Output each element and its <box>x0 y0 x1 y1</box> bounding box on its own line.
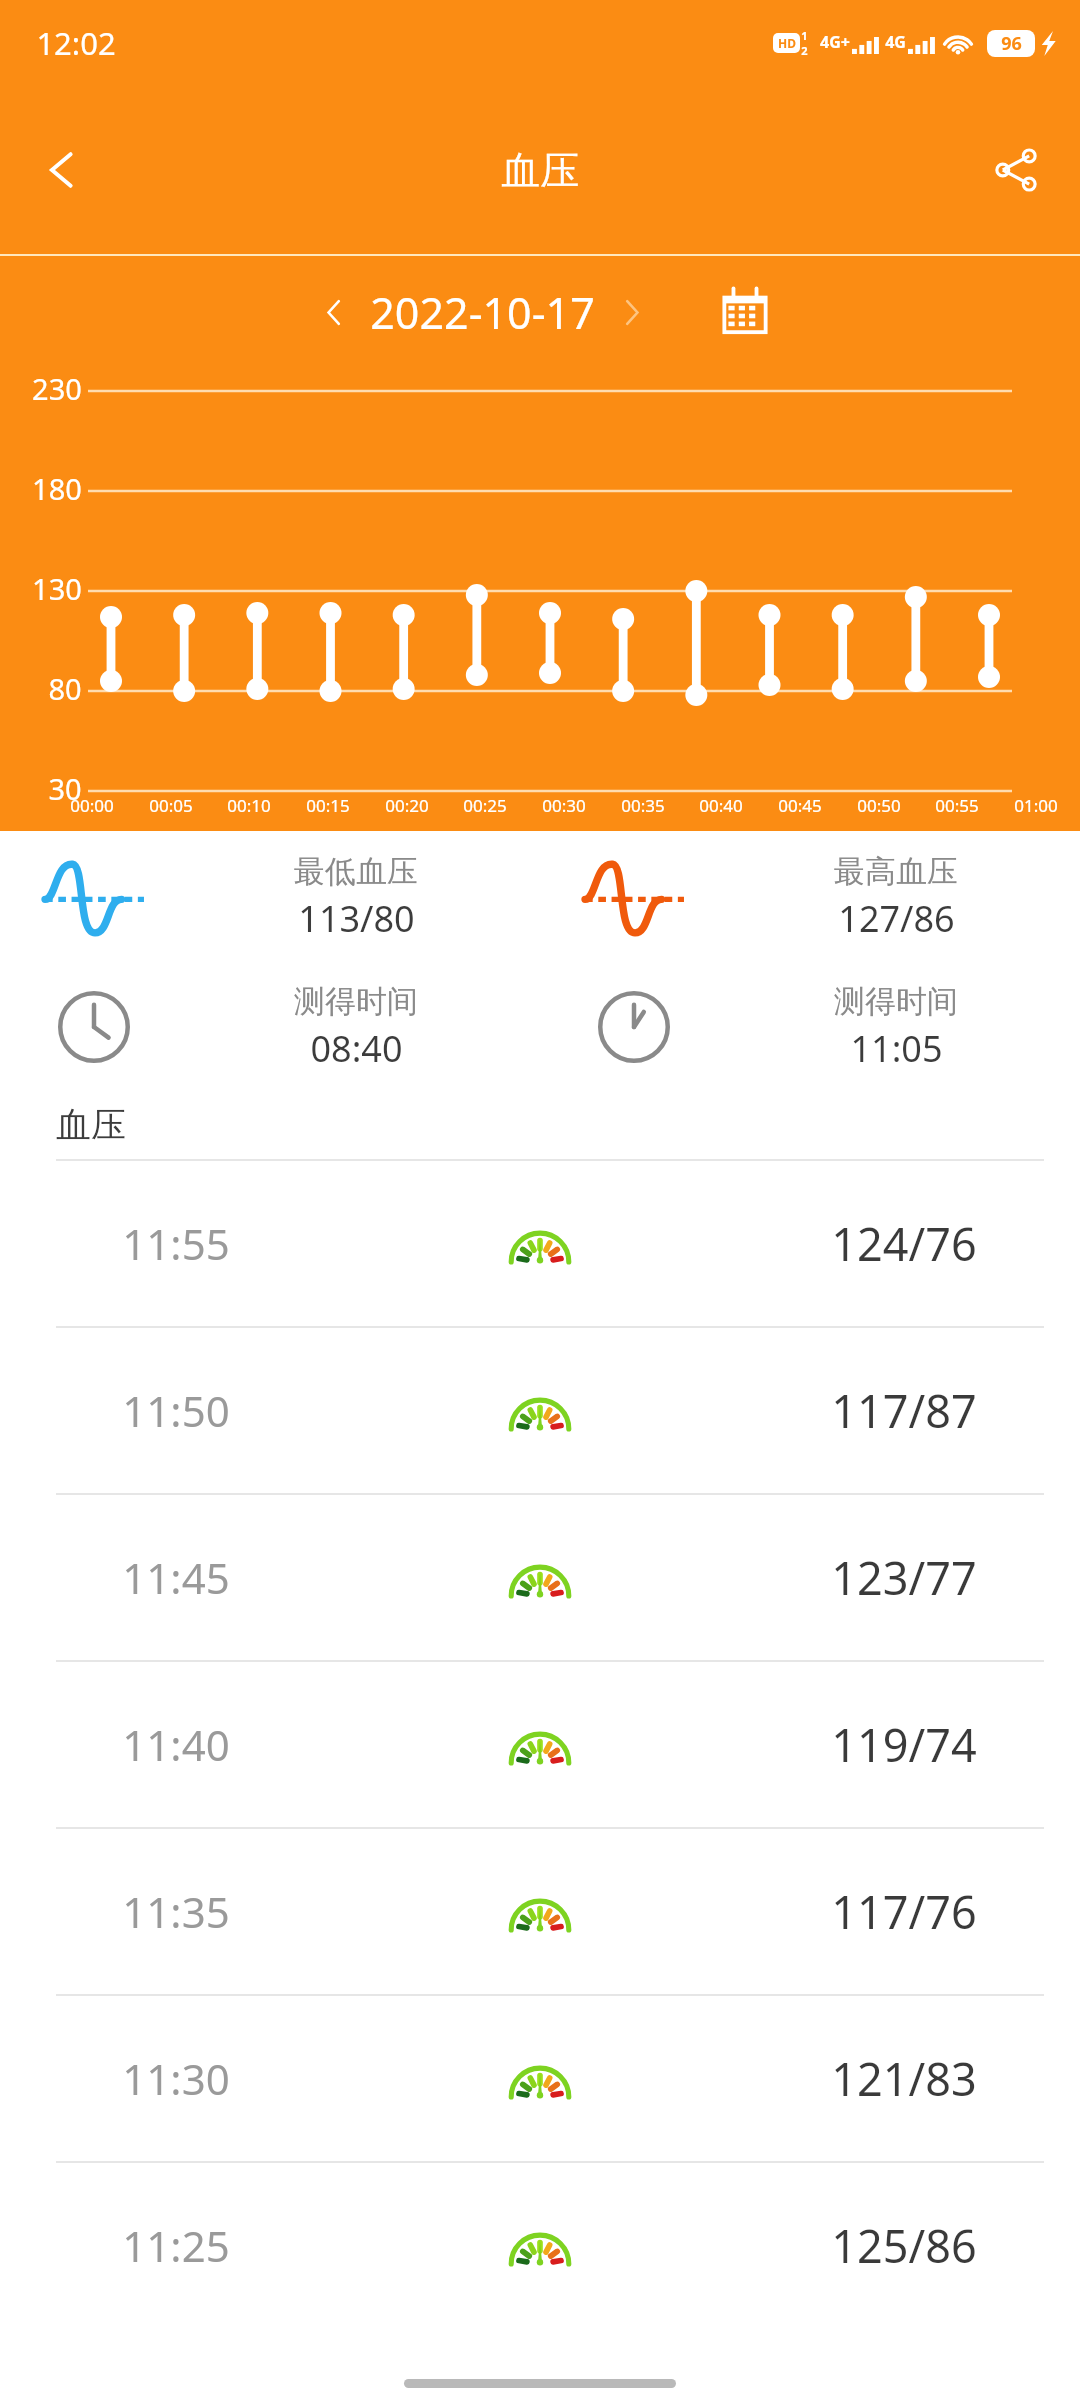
staticText: 30 <box>48 769 82 808</box>
staticText: 00:40 <box>699 794 743 817</box>
staticText: 11:40 <box>122 1716 230 1773</box>
staticText: 127/86 <box>838 894 955 943</box>
staticText: 124/76 <box>831 1213 977 1274</box>
staticText: 00:30 <box>542 794 586 817</box>
button[interactable]: Share <box>966 120 1066 220</box>
button[interactable]: Previous day <box>298 276 370 348</box>
staticText: 00:25 <box>463 794 507 817</box>
staticText: 11:25 <box>122 2217 230 2274</box>
staticText: 2 <box>801 43 808 58</box>
staticText: 11:05 <box>850 1024 943 1073</box>
staticText: 00:05 <box>149 794 193 817</box>
button[interactable]: 11:30 <box>0 1996 1080 2161</box>
staticText: 121/83 <box>831 2048 977 2109</box>
staticText: 11:30 <box>122 2050 230 2107</box>
button[interactable]: 测得时间 <box>0 963 540 1091</box>
staticText: 00:45 <box>778 794 822 817</box>
staticText: 11:55 <box>122 1215 230 1272</box>
button[interactable]: 最低血压 <box>0 831 540 963</box>
button[interactable]: 测得时间 <box>540 963 1080 1091</box>
button[interactable]: 11:50 <box>0 1328 1080 1493</box>
staticText: 00:35 <box>621 794 665 817</box>
staticText: 117/76 <box>831 1881 977 1942</box>
button[interactable]: Calendar <box>707 274 783 350</box>
staticText: 00:50 <box>857 794 901 817</box>
staticText: 1 <box>801 28 808 43</box>
staticText: 测得时间 <box>294 982 418 1021</box>
button[interactable]: 11:55 <box>0 1161 1080 1326</box>
staticText: 4G+ <box>820 31 850 53</box>
staticText: 最高血压 <box>834 852 958 891</box>
staticText: 测得时间 <box>834 982 958 1021</box>
staticText: 80 <box>48 669 82 708</box>
staticText: 113/80 <box>298 894 415 943</box>
staticText: 230 <box>32 369 82 408</box>
staticText: 血压 <box>501 146 579 195</box>
staticText: 12:02 <box>36 22 116 64</box>
button[interactable]: 11:25 <box>0 2163 1080 2328</box>
staticText: 00:15 <box>306 794 350 817</box>
staticText: 11:35 <box>122 1883 230 1940</box>
button[interactable]: Next day <box>595 276 667 348</box>
button[interactable]: 11:35 <box>0 1829 1080 1994</box>
button[interactable]: 11:40 <box>0 1662 1080 1827</box>
staticText: 01:00 <box>1014 794 1058 817</box>
staticText: 123/77 <box>831 1547 977 1608</box>
staticText: 最低血压 <box>294 852 418 891</box>
button[interactable]: Back <box>12 120 112 220</box>
staticText: 血压 <box>56 1103 126 1147</box>
button[interactable]: 11:45 <box>0 1495 1080 1660</box>
staticText: HD <box>778 35 796 51</box>
staticText: 11:50 <box>122 1382 230 1439</box>
staticText: 130 <box>32 569 82 608</box>
staticText: 119/74 <box>831 1714 977 1775</box>
button[interactable]: 最高血压 <box>540 831 1080 963</box>
staticText: 96 <box>1001 31 1022 56</box>
staticText: 00:00 <box>70 794 114 817</box>
staticText: 08:40 <box>310 1024 403 1073</box>
staticText: 180 <box>32 469 82 508</box>
staticText: 00:20 <box>385 794 429 817</box>
staticText: 4G <box>885 31 906 53</box>
staticText: 00:55 <box>935 794 979 817</box>
staticText: 117/87 <box>831 1380 977 1441</box>
staticText: 11:45 <box>122 1549 230 1606</box>
staticText: 00:10 <box>227 794 271 817</box>
staticText: 125/86 <box>831 2215 977 2276</box>
button[interactable]: 2022-10-17 <box>370 283 595 342</box>
